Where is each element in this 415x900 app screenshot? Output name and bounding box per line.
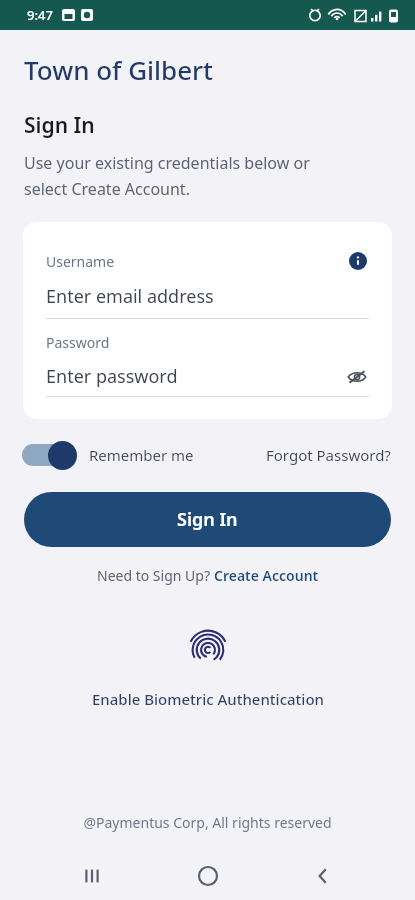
staticText: Use your existing credentials below or s… <box>24 152 310 200</box>
button[interactable]: Enter email address <box>46 284 214 309</box>
button[interactable]: Remember me <box>22 440 194 470</box>
staticText: @Paymentus Corp, All rights reserved <box>0 813 415 832</box>
staticText: Enable Biometric Authentication <box>92 689 324 709</box>
button[interactable]: Create Account <box>214 566 319 585</box>
staticText: Username <box>46 252 115 271</box>
staticText: Sign In <box>24 111 95 140</box>
staticText: Sign In <box>177 507 238 532</box>
button[interactable]: Recent apps <box>68 852 116 900</box>
staticText: Need to Sign Up? <box>97 566 214 585</box>
staticText: Password <box>46 333 110 352</box>
button[interactable]: Home <box>184 852 232 900</box>
staticText: Forgot Password? <box>266 445 391 465</box>
button[interactable]: Enter password <box>46 364 178 389</box>
button[interactable]: Enable Biometric Authentication <box>0 621 415 709</box>
button[interactable]: Back <box>299 852 347 900</box>
button[interactable]: Username information <box>347 250 369 272</box>
button[interactable]: Forgot Password? <box>266 445 391 465</box>
button[interactable]: Show password <box>345 365 369 389</box>
staticText: Remember me <box>89 445 194 465</box>
staticText: Create Account <box>214 566 319 585</box>
staticText: 9:47 <box>27 6 53 24</box>
button[interactable]: Sign In <box>24 492 391 547</box>
staticText: Town of Gilbert <box>24 52 214 87</box>
